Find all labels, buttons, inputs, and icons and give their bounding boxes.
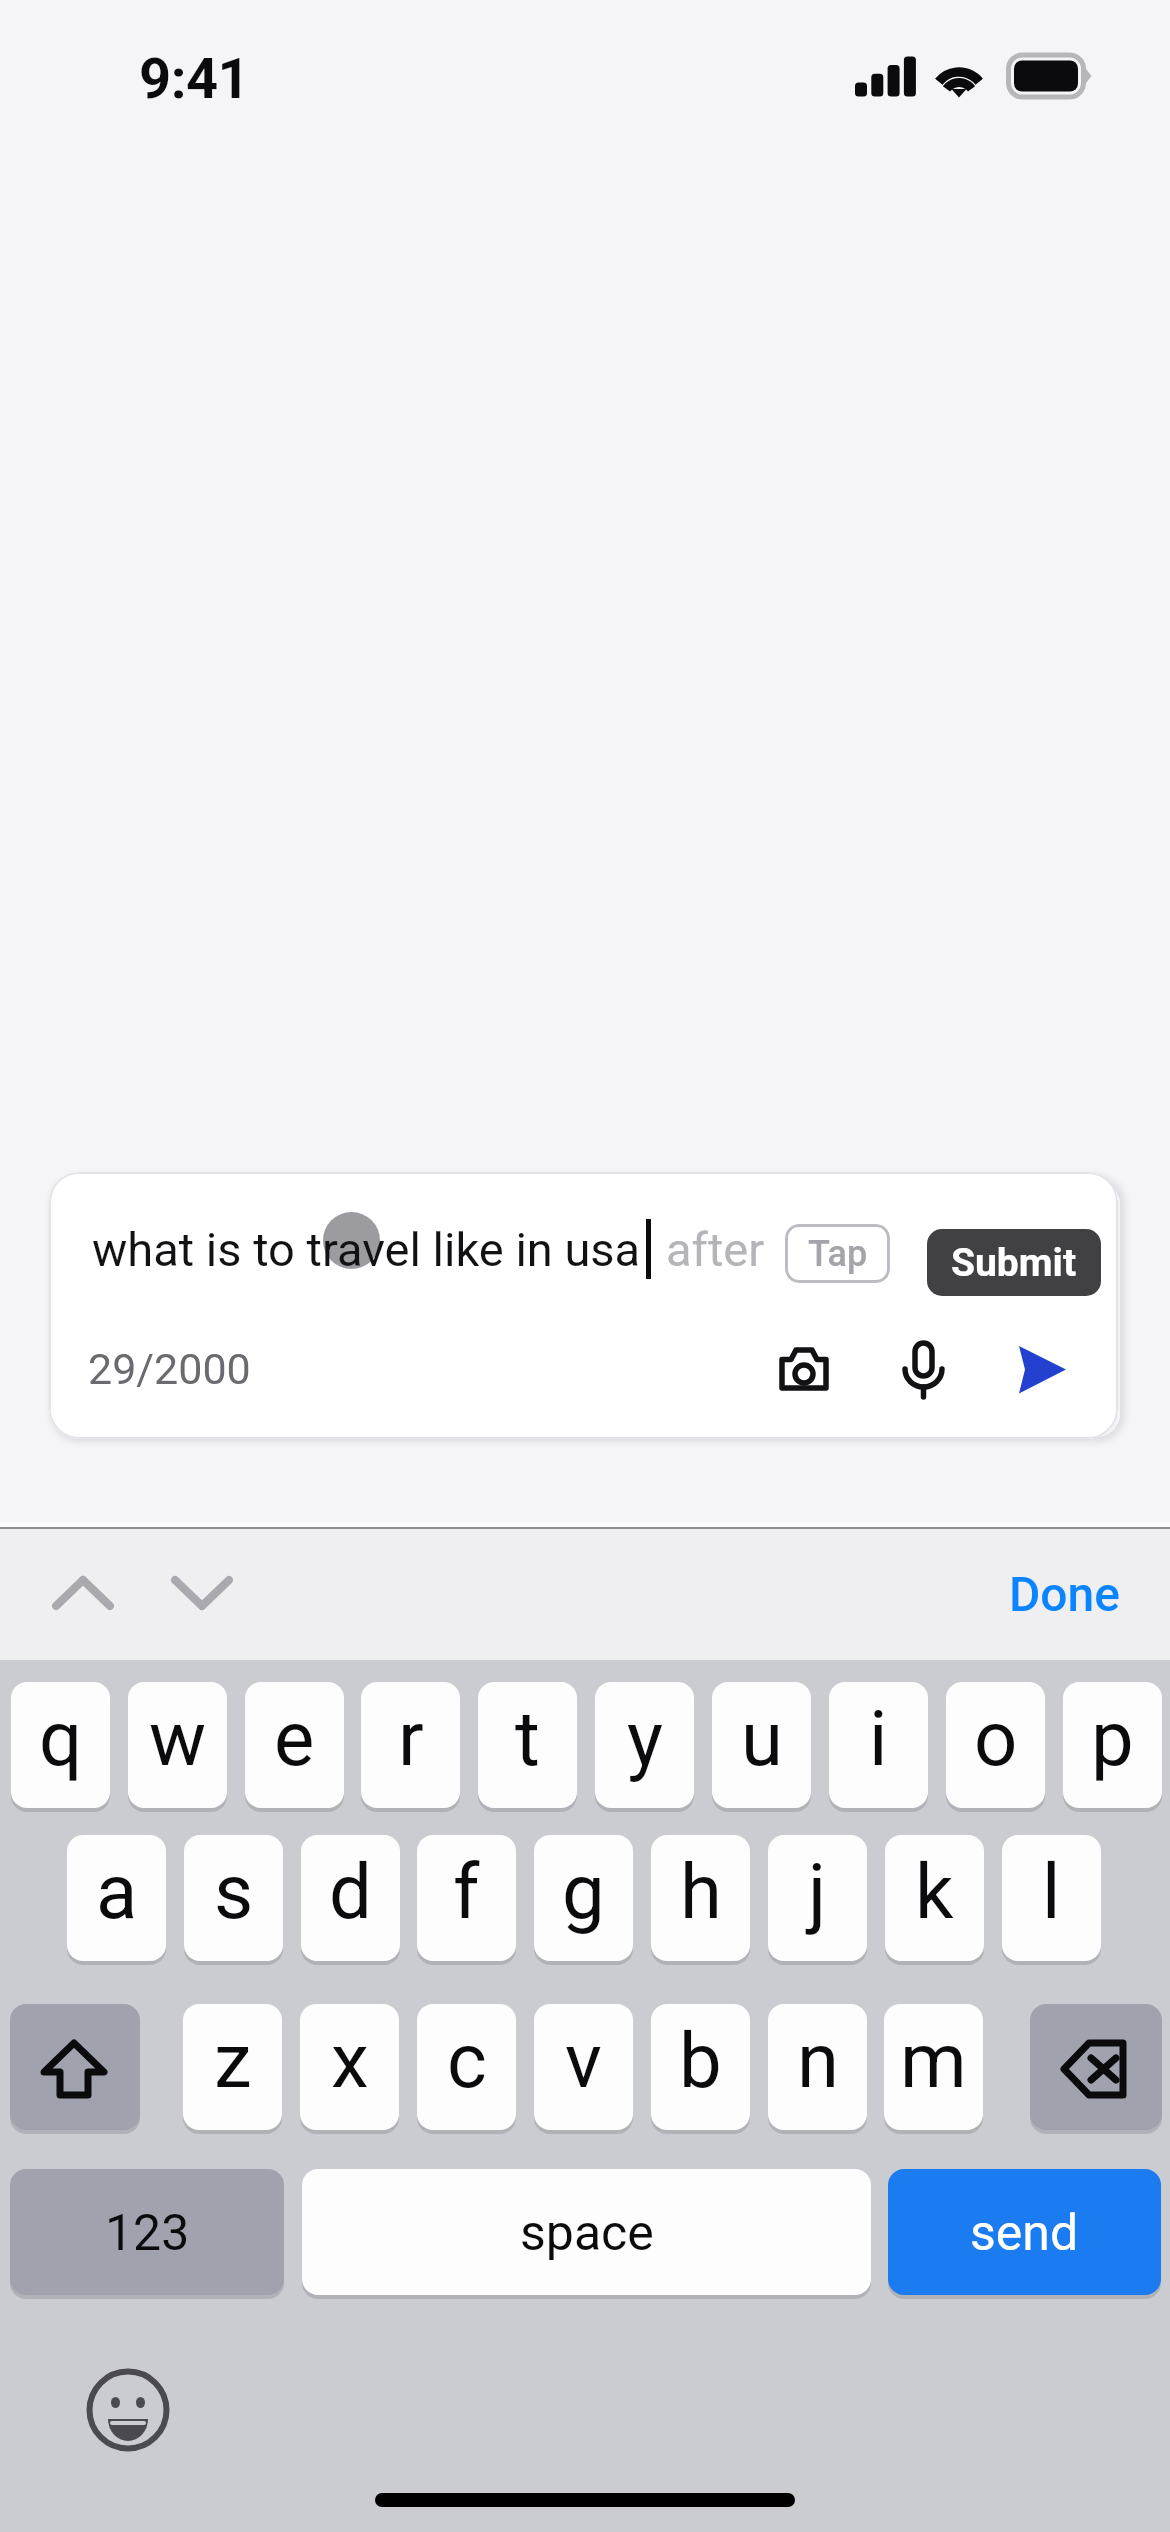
- button[interactable]: w: [128, 1682, 227, 1808]
- staticText: u: [741, 1694, 783, 1783]
- staticText: a: [96, 1847, 138, 1936]
- staticText: 9:41: [139, 46, 250, 112]
- staticText: h: [680, 1847, 722, 1936]
- button[interactable]: h: [651, 1835, 750, 1961]
- button[interactable]: f: [417, 1835, 516, 1961]
- button[interactable]: c: [417, 2004, 516, 2130]
- staticText: s: [214, 1847, 254, 1936]
- staticText: p: [1091, 1694, 1134, 1783]
- staticText: l: [1042, 1847, 1061, 1936]
- button[interactable]: o: [946, 1682, 1045, 1808]
- staticText: 29/2000: [88, 1344, 251, 1394]
- button[interactable]: y: [595, 1682, 694, 1808]
- button[interactable]: Take photo: [754, 1319, 854, 1419]
- button[interactable]: t: [478, 1682, 577, 1808]
- button[interactable]: a: [67, 1835, 166, 1961]
- staticText: o: [974, 1694, 1018, 1783]
- button[interactable]: e: [245, 1682, 344, 1808]
- staticText: c: [447, 2016, 487, 2105]
- button[interactable]: 123: [10, 2169, 284, 2295]
- staticText: space: [520, 2204, 654, 2263]
- button[interactable]: d: [301, 1835, 400, 1961]
- button[interactable]: space: [302, 2169, 871, 2295]
- button[interactable]: send: [888, 2169, 1161, 2295]
- button[interactable]: l: [1002, 1835, 1101, 1961]
- staticText: Tap: [808, 1233, 868, 1275]
- button[interactable]: Tap: [785, 1224, 890, 1283]
- button[interactable]: g: [534, 1835, 633, 1961]
- button[interactable]: Previous field: [40, 1563, 126, 1623]
- button[interactable]: v: [534, 2004, 633, 2130]
- staticText: z: [214, 2016, 252, 2105]
- staticText: y: [627, 1694, 663, 1783]
- button[interactable]: Backspace: [1030, 2004, 1162, 2130]
- button[interactable]: m: [884, 2004, 983, 2130]
- button[interactable]: Shift: [10, 2004, 140, 2130]
- staticText: k: [915, 1847, 954, 1936]
- staticText: x: [331, 2016, 369, 2105]
- button[interactable]: Next field: [159, 1563, 245, 1623]
- button[interactable]: b: [651, 2004, 750, 2130]
- staticText: what is to travel like in usa: [92, 1222, 641, 1277]
- button[interactable]: Emoji keyboard: [80, 2362, 176, 2458]
- staticText: r: [398, 1694, 424, 1783]
- staticText: j: [808, 1847, 827, 1936]
- button[interactable]: Send message: [993, 1320, 1093, 1420]
- staticText: w: [149, 1694, 207, 1783]
- button[interactable]: u: [712, 1682, 811, 1808]
- button[interactable]: k: [885, 1835, 984, 1961]
- staticText: e: [274, 1694, 315, 1783]
- button[interactable]: Voice input: [873, 1320, 973, 1420]
- staticText: i: [869, 1694, 888, 1783]
- button[interactable]: x: [300, 2004, 399, 2130]
- button[interactable]: r: [361, 1682, 460, 1808]
- staticText: t: [515, 1694, 540, 1783]
- staticText: g: [562, 1847, 605, 1936]
- button[interactable]: j: [768, 1835, 867, 1961]
- staticText: f: [453, 1847, 480, 1936]
- staticText: d: [329, 1847, 372, 1936]
- staticText: v: [565, 2016, 602, 2105]
- button[interactable]: z: [183, 2004, 282, 2130]
- staticText: b: [679, 2016, 722, 2105]
- button[interactable]: i: [829, 1682, 928, 1808]
- staticText: m: [900, 2016, 967, 2105]
- button[interactable]: Done: [997, 1552, 1132, 1636]
- button[interactable]: q: [11, 1682, 110, 1808]
- staticText: Submit: [951, 1240, 1077, 1286]
- staticText: after: [666, 1222, 765, 1277]
- button[interactable]: p: [1063, 1682, 1162, 1808]
- button[interactable]: Message text field: [69, 1190, 769, 1312]
- staticText: Done: [1009, 1566, 1120, 1622]
- button[interactable]: n: [768, 2004, 867, 2130]
- staticText: n: [797, 2016, 839, 2105]
- button[interactable]: Submit: [927, 1229, 1101, 1296]
- button[interactable]: s: [184, 1835, 283, 1961]
- staticText: send: [970, 2204, 1079, 2263]
- staticText: q: [39, 1694, 83, 1783]
- staticText: 123: [105, 2204, 190, 2263]
